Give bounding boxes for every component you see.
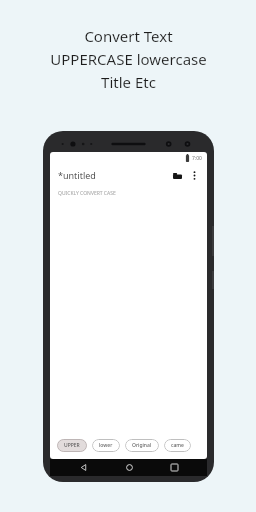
staticText: came: [171, 442, 184, 449]
button[interactable]: More options: [187, 168, 201, 182]
staticText: UPPER: [64, 442, 80, 449]
button[interactable]: Original: [125, 439, 159, 452]
button[interactable]: came: [164, 439, 191, 452]
staticText: lower: [99, 442, 113, 449]
staticText: *untitled: [58, 169, 96, 181]
button[interactable]: Back: [71, 459, 95, 476]
button[interactable]: Open folder: [169, 167, 185, 183]
staticText: Original: [132, 442, 152, 449]
button[interactable]: Home: [117, 459, 141, 476]
staticText: QUICKLY CONVERT CASE: [58, 190, 116, 197]
button[interactable]: UPPER: [57, 439, 87, 452]
button[interactable]: Recent apps: [162, 459, 186, 476]
staticText: Title Etc: [101, 72, 156, 92]
staticText: 7:00: [192, 155, 202, 162]
button[interactable]: lower: [92, 439, 120, 452]
staticText: Convert Text: [84, 26, 173, 46]
staticText: UPPERCASE lowercase: [50, 49, 207, 69]
